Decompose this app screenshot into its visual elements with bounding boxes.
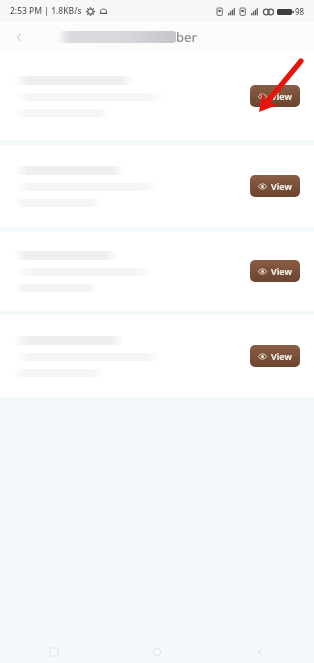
button[interactable]: Home [149, 644, 165, 660]
staticText: 98 [295, 6, 305, 17]
staticText: 2:53 PM | 1.8KB/s [10, 5, 82, 17]
staticText: ber [176, 28, 198, 46]
staticText: View [271, 180, 292, 192]
button[interactable]: Back [252, 644, 268, 660]
button[interactable]: Back [8, 26, 30, 48]
staticText: View [271, 90, 292, 102]
button[interactable]: View [0, 315, 314, 397]
button[interactable]: View [250, 260, 300, 282]
button[interactable]: View [250, 345, 300, 367]
button[interactable]: View [0, 52, 314, 140]
button[interactable]: View [250, 175, 300, 197]
staticText: View [271, 350, 292, 362]
button[interactable]: View [0, 145, 314, 227]
button[interactable]: View [250, 85, 300, 107]
staticText: View [271, 265, 292, 277]
button[interactable]: Recents [46, 644, 62, 660]
button[interactable]: View [0, 232, 314, 310]
